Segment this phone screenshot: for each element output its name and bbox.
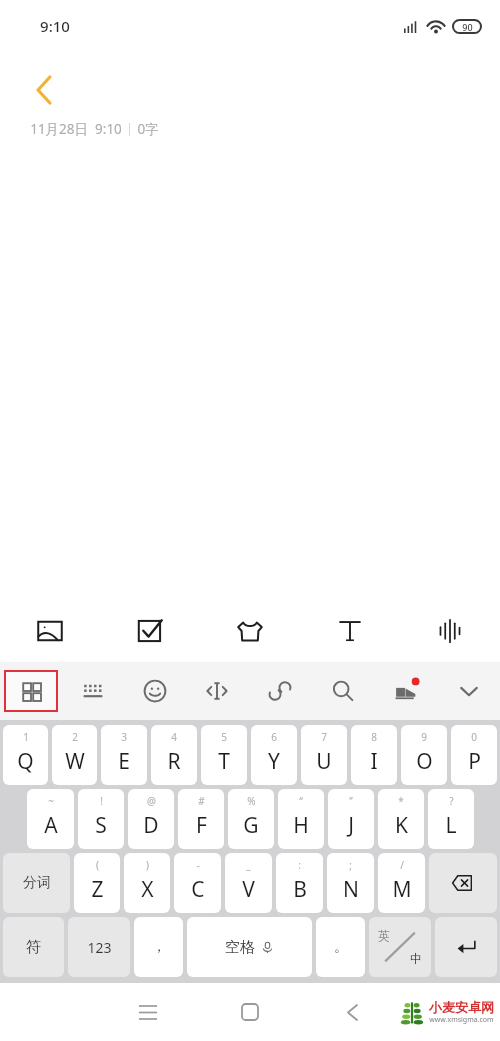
button[interactable]: Clipboard xyxy=(248,662,311,720)
button[interactable]: ? xyxy=(428,789,474,849)
button[interactable]: 9 xyxy=(401,725,447,785)
button[interactable]: ” xyxy=(328,789,374,849)
button[interactable]: Enter xyxy=(435,917,497,977)
staticText: 9 xyxy=(421,730,427,744)
staticText: 0字 xyxy=(137,120,159,138)
button[interactable]: Recent apps xyxy=(124,988,172,1036)
staticText: * xyxy=(398,794,404,808)
staticText: % xyxy=(247,794,256,808)
button[interactable]: ) xyxy=(124,853,170,913)
staticText: X xyxy=(141,875,154,904)
staticText: U xyxy=(316,747,332,776)
staticText: O xyxy=(416,747,433,776)
staticText: I xyxy=(370,747,378,776)
button[interactable]: Home xyxy=(226,988,274,1036)
button[interactable]: ; xyxy=(327,853,374,913)
button[interactable]: 7 xyxy=(301,725,347,785)
button[interactable]: Panel xyxy=(0,662,62,720)
button[interactable]: 。 xyxy=(316,917,365,977)
button[interactable]: Text format xyxy=(300,600,400,662)
button[interactable]: 4 xyxy=(151,725,197,785)
staticText: V xyxy=(242,875,255,904)
button[interactable]: ! xyxy=(78,789,124,849)
staticText: ! xyxy=(100,794,103,808)
staticText: ; xyxy=(349,858,352,872)
button[interactable]: 1 xyxy=(3,725,48,785)
staticText: 。 xyxy=(334,938,348,956)
staticText: : xyxy=(298,858,301,872)
button[interactable]: 6 xyxy=(251,725,297,785)
button[interactable]: 2 xyxy=(52,725,97,785)
button[interactable]: / xyxy=(378,853,425,913)
button[interactable]: ， xyxy=(134,917,183,977)
button[interactable]: Backspace xyxy=(429,853,497,913)
staticText: 11月28日 9:10 xyxy=(30,120,122,138)
staticText: 7 xyxy=(321,730,327,744)
staticText: @ xyxy=(147,794,156,808)
button[interactable]: 英 xyxy=(369,917,431,977)
staticText: 3 xyxy=(121,730,127,744)
button[interactable]: 符 xyxy=(3,917,64,977)
button[interactable]: 分词 xyxy=(3,853,70,913)
staticText: P xyxy=(468,747,481,776)
button[interactable]: 8 xyxy=(351,725,397,785)
staticText: ) xyxy=(146,858,149,872)
staticText: 8 xyxy=(371,730,377,744)
staticText: B xyxy=(293,875,307,904)
staticText: Y xyxy=(268,747,280,776)
staticText: D xyxy=(143,811,159,840)
button[interactable]: # xyxy=(178,789,224,849)
button[interactable]: “ xyxy=(278,789,324,849)
button[interactable]: ( xyxy=(74,853,120,913)
button[interactable]: Back xyxy=(328,988,376,1036)
button[interactable]: 5 xyxy=(201,725,247,785)
staticText: R xyxy=(167,747,181,776)
button[interactable]: % xyxy=(228,789,274,849)
button[interactable]: Hide keyboard xyxy=(437,662,500,720)
button[interactable]: Style xyxy=(200,600,300,662)
staticText: G xyxy=(243,811,259,840)
staticText: 123 xyxy=(87,938,112,957)
button[interactable]: : xyxy=(276,853,323,913)
button[interactable]: 0 xyxy=(451,725,497,785)
staticText: 小麦安卓网 xyxy=(429,999,494,1015)
button[interactable]: Voice xyxy=(400,600,500,662)
staticText: ~ xyxy=(48,794,54,808)
staticText: 9:10 xyxy=(40,16,70,36)
button[interactable]: Search xyxy=(311,662,374,720)
staticText: # xyxy=(198,794,205,808)
staticText: “ xyxy=(299,794,303,808)
staticText: - xyxy=(196,858,200,872)
button[interactable]: Cursor move xyxy=(186,662,248,720)
staticText: H xyxy=(293,811,309,840)
staticText: F xyxy=(196,811,207,840)
staticText: S xyxy=(95,811,107,840)
button[interactable]: 123 xyxy=(68,917,130,977)
staticText: K xyxy=(395,811,408,840)
button[interactable]: - xyxy=(174,853,221,913)
staticText: 6 xyxy=(271,730,277,744)
button[interactable]: Checklist xyxy=(100,600,200,662)
staticText: / xyxy=(400,858,404,872)
staticText: 分词 xyxy=(23,874,51,892)
staticText: ( xyxy=(96,858,99,872)
button[interactable]: Keyboard layout xyxy=(62,662,124,720)
button[interactable]: Back xyxy=(22,68,66,112)
button[interactable]: * xyxy=(378,789,424,849)
staticText: 空格 xyxy=(225,938,255,957)
button[interactable]: 3 xyxy=(101,725,147,785)
button[interactable]: Skin xyxy=(374,662,437,720)
staticText: E xyxy=(118,747,130,776)
staticText: 0 xyxy=(471,730,477,744)
button[interactable]: Insert image xyxy=(0,600,100,662)
staticText: ” xyxy=(349,794,353,808)
staticText: 4 xyxy=(171,730,177,744)
button[interactable]: 空格 xyxy=(187,917,312,977)
staticText: T xyxy=(218,747,230,776)
staticText: 2 xyxy=(72,730,78,744)
button[interactable]: @ xyxy=(128,789,174,849)
button[interactable]: Emoji xyxy=(124,662,186,720)
button[interactable]: _ xyxy=(225,853,272,913)
button[interactable]: ~ xyxy=(27,789,74,849)
staticText: ， xyxy=(152,938,166,956)
